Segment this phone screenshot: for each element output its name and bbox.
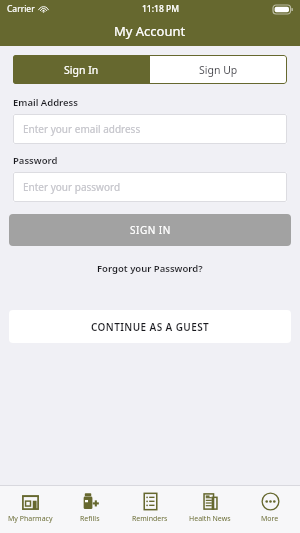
staticText: Forgot your Password? — [97, 262, 203, 275]
staticText: Reminders — [132, 514, 168, 524]
button[interactable]: SIGN IN — [9, 214, 291, 246]
button[interactable]: Health News — [180, 486, 240, 533]
staticText: 11:18 PM — [142, 3, 179, 15]
staticText: Password — [13, 154, 58, 167]
other: Reminders — [141, 492, 160, 511]
staticText: My Account — [114, 22, 186, 40]
other: My Pharmacy — [21, 492, 40, 511]
button[interactable]: Enter your password — [13, 172, 287, 202]
button[interactable]: Reminders — [120, 486, 180, 533]
button[interactable]: My Pharmacy — [0, 486, 60, 533]
staticText: More — [261, 514, 279, 524]
other: Refills — [81, 492, 100, 511]
staticText: My Pharmacy — [8, 514, 53, 524]
staticText: Carrier — [7, 3, 35, 15]
staticText: Refills — [80, 514, 100, 524]
staticText: Email Address — [13, 96, 78, 109]
other: Health News — [201, 492, 220, 511]
other: More — [261, 492, 280, 511]
staticText: Sign In — [64, 63, 99, 77]
button[interactable]: Sign In — [13, 55, 150, 84]
staticText: Sign Up — [199, 63, 238, 77]
staticText: CONTINUE AS A GUEST — [91, 320, 210, 334]
button[interactable]: Forgot your Password? — [0, 259, 300, 278]
button[interactable]: Enter your email address — [13, 114, 287, 144]
staticText: SIGN IN — [130, 223, 171, 237]
staticText: Enter your email address — [23, 122, 141, 136]
button[interactable]: CONTINUE AS A GUEST — [9, 310, 291, 343]
button[interactable]: More — [240, 486, 300, 533]
staticText: Enter your password — [23, 180, 121, 194]
button[interactable]: Refills — [60, 486, 120, 533]
staticText: Health News — [189, 514, 231, 524]
button[interactable]: Sign Up — [150, 55, 287, 84]
